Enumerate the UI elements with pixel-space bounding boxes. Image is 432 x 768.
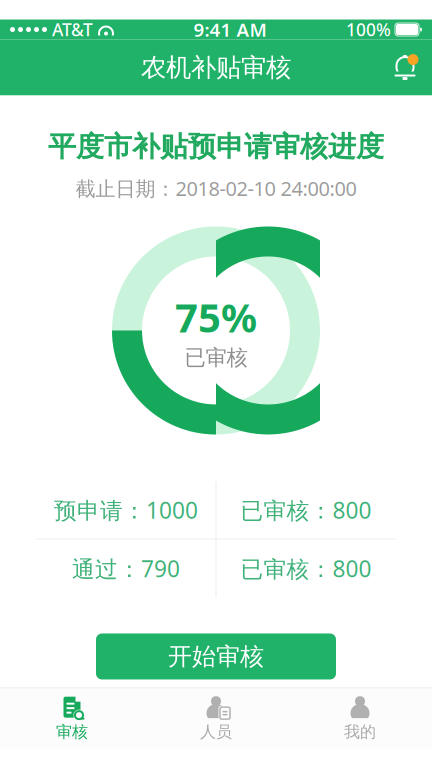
staticText: 开始审核 (168, 642, 264, 671)
staticText: 100% (346, 18, 391, 41)
staticText: 截止日期：2018-02-10 24:00:00 (75, 175, 356, 201)
button[interactable]: 开始审核 (96, 633, 336, 679)
staticText: 我的 (344, 722, 376, 742)
staticText: 审核 (56, 722, 88, 742)
staticText: 人员 (200, 722, 232, 742)
staticText: AT&T (52, 18, 93, 41)
staticText: 农机补贴审核 (141, 52, 291, 83)
button[interactable]: 人员 (144, 688, 288, 748)
button[interactable]: 我的 (288, 688, 432, 748)
staticText: 预申请：1000 (54, 495, 198, 525)
staticText: 已审核 (184, 344, 247, 371)
staticText: 9:41 AM (193, 17, 266, 42)
button[interactable]: 审核 (0, 688, 144, 748)
staticText: 已审核：800 (240, 553, 371, 583)
staticText: 已审核：800 (240, 495, 371, 525)
staticText: 通过：790 (72, 553, 180, 583)
staticText: 75% (175, 290, 257, 343)
staticText: 平度市补贴预申请审核进度 (48, 129, 384, 164)
button[interactable]: Notifications (378, 45, 432, 89)
